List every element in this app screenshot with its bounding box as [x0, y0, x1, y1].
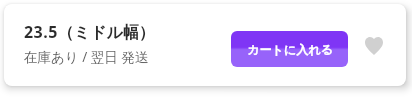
staticText: カートに入れる — [247, 42, 333, 57]
staticText: 在庫あり / 翌日 発送 — [24, 48, 149, 66]
button[interactable]: カートに入れる — [231, 31, 348, 67]
staticText: 23.5（ミドル幅） — [24, 21, 155, 43]
button[interactable]: Add to wishlist — [356, 28, 392, 64]
